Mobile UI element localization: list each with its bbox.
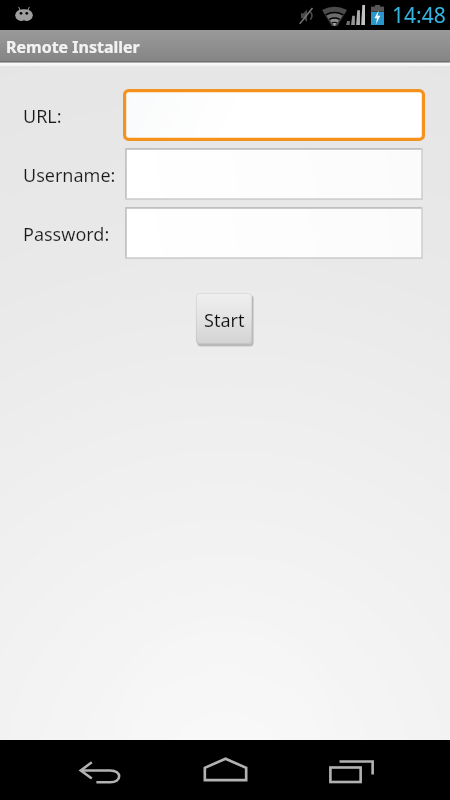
button[interactable] [125,148,423,200]
button[interactable]: Start [196,293,253,345]
staticText: Username: [23,163,116,188]
staticText: Password: [23,222,110,247]
button[interactable] [125,207,423,259]
button[interactable]: Home [165,745,285,795]
staticText: URL: [23,104,62,129]
button[interactable]: Back [41,746,161,796]
staticText: Remote Installer [6,36,140,58]
staticText: Start [204,308,245,333]
staticText: 14:48 [392,1,446,30]
button[interactable] [123,89,425,141]
button[interactable]: Recent apps [292,746,412,796]
